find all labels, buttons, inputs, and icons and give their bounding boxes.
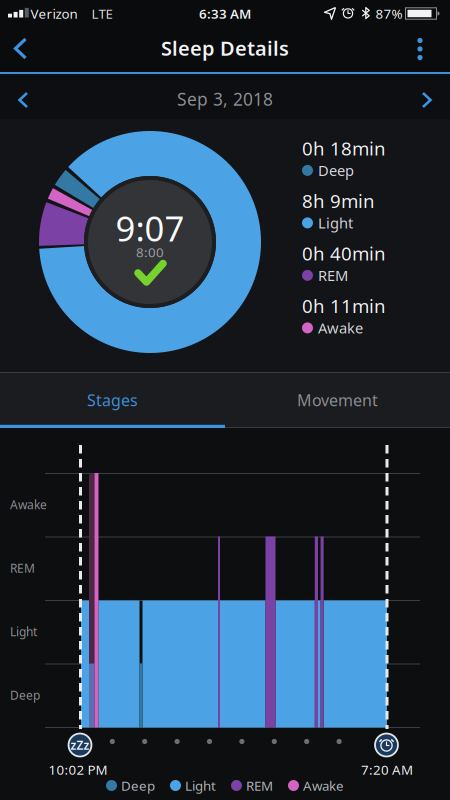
staticText: Verizon — [30, 5, 77, 22]
staticText: 0h 18min — [302, 136, 386, 161]
staticText: Movement — [297, 389, 378, 411]
button[interactable]: Previous day — [1, 77, 45, 121]
staticText: 0h 11min — [302, 293, 386, 318]
staticText: REM — [318, 266, 348, 285]
staticText: 0h 40min — [302, 241, 386, 266]
staticText: zZz — [70, 737, 89, 753]
staticText: Deep — [10, 687, 40, 703]
staticText: Awake — [318, 318, 363, 338]
button[interactable]: Next day — [405, 77, 449, 121]
staticText: Stages — [87, 389, 138, 411]
staticText: LTE — [91, 5, 112, 22]
staticText: 10:02 PM — [48, 761, 107, 778]
button[interactable]: Stages — [0, 373, 225, 427]
staticText: Light — [318, 213, 353, 233]
staticText: 87% — [375, 5, 402, 22]
button[interactable]: Movement — [225, 373, 450, 427]
staticText: Deep — [121, 777, 155, 794]
button[interactable]: More options — [398, 28, 442, 72]
staticText: 9:07 — [115, 205, 184, 251]
staticText: Sleep Details — [161, 35, 289, 61]
staticText: 6:33 AM — [199, 5, 251, 22]
staticText: 8:00 — [136, 243, 164, 261]
staticText: Sep 3, 2018 — [177, 87, 273, 110]
staticText: REM — [246, 777, 273, 794]
staticText: 8h 9min — [302, 188, 375, 213]
button[interactable]: Back — [0, 28, 44, 72]
staticText: Light — [10, 623, 37, 639]
staticText: Awake — [10, 496, 47, 512]
staticText: Deep — [318, 161, 354, 180]
staticText: 7:20 AM — [361, 761, 413, 778]
staticText: REM — [10, 560, 35, 576]
staticText: Light — [185, 777, 216, 794]
staticText: Awake — [303, 777, 344, 794]
